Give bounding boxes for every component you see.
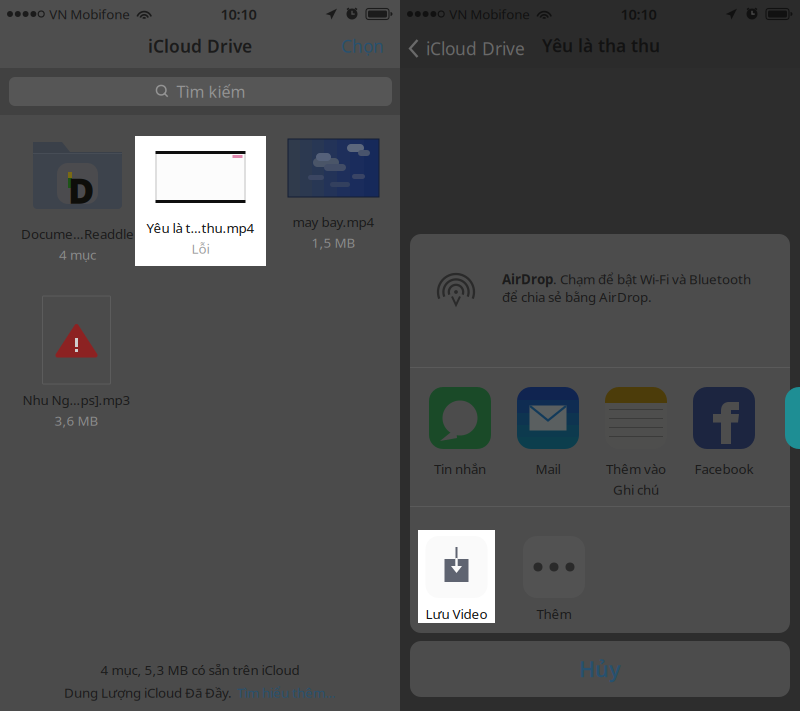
button[interactable]: Tìm hiểu thêm… <box>237 684 336 701</box>
staticText: VN Mobifone <box>49 5 130 23</box>
staticText: D <box>68 166 94 214</box>
staticText: Chọn <box>341 34 384 57</box>
button[interactable]: Nhu Ng…ps].mp3 <box>10 296 143 429</box>
staticText: AirDrop. Chạm để bật Wi-Fi và Bluetooth … <box>502 270 751 306</box>
staticText: Tìm kiếm <box>176 81 245 102</box>
staticText: Yêu là t…thu.mp4 <box>146 219 254 237</box>
button[interactable]: iCloud Drive <box>400 29 533 68</box>
button[interactable]: Hủy <box>410 641 790 697</box>
staticText: Docume…Readdle <box>21 225 134 243</box>
staticText: Tìm hiểu thêm… <box>237 684 336 701</box>
staticText: Mail <box>535 460 560 478</box>
button[interactable]: Tin nhắn <box>429 387 491 478</box>
staticText: 3,6 MB <box>54 412 98 429</box>
staticText: Yêu là tha thu <box>542 34 660 57</box>
staticText: VN Mobifone <box>449 5 530 23</box>
button[interactable]: Mail <box>517 387 579 478</box>
staticText: 4 mục <box>59 246 96 263</box>
button[interactable]: Thêm <box>509 536 599 629</box>
button[interactable]: Thêm vào <box>605 387 667 498</box>
staticText: Facebook <box>694 460 753 478</box>
staticText: 4 mục, 5,3 MB có sẵn trên iCloud <box>100 661 299 679</box>
staticText: Lưu Video <box>425 605 487 623</box>
staticText: iCloud Drive <box>148 34 252 57</box>
button[interactable]: Chọn <box>325 26 400 65</box>
staticText: iCloud Drive <box>426 37 525 60</box>
button[interactable]: Tìm kiếm <box>9 77 392 106</box>
button[interactable]: AirDrop. Chạm để bật Wi-Fi và Bluetooth … <box>428 258 790 318</box>
staticText: Dung Lượng iCloud Đã Đầy. <box>64 684 232 701</box>
staticText: 10:10 <box>621 4 657 24</box>
button[interactable]: D <box>11 139 144 254</box>
button[interactable]: Yêu là t…thu.mp4 <box>135 136 266 266</box>
staticText: Tin nhắn <box>434 460 486 478</box>
staticText: Nhu Ng…ps].mp3 <box>22 391 130 409</box>
staticText: 1,5 MB <box>311 234 355 251</box>
button[interactable]: Lưu Video <box>418 530 495 623</box>
staticText: 10:10 <box>221 4 257 24</box>
staticText: Thêm <box>536 605 571 623</box>
button[interactable]: may bay.mp4 <box>267 139 400 254</box>
staticText: Thêm vào <box>606 460 666 478</box>
staticText: Ghi chú <box>613 481 659 498</box>
staticText: Hủy <box>579 655 621 683</box>
staticText: may bay.mp4 <box>292 213 374 231</box>
button[interactable]: Facebook <box>693 387 755 478</box>
staticText: Lỗi <box>191 240 209 257</box>
